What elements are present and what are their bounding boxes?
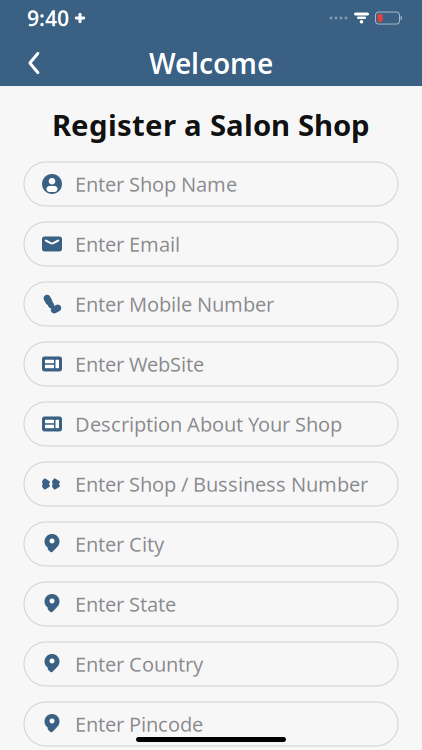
- button[interactable]: Enter Shop / Bussiness Number: [24, 462, 398, 506]
- button[interactable]: Enter Pincode: [24, 702, 398, 746]
- button[interactable]: Description About Your Shop: [24, 402, 398, 446]
- staticText: Enter City: [75, 531, 164, 557]
- staticText: Enter State: [75, 591, 176, 617]
- button[interactable]: Enter Mobile Number: [24, 282, 398, 326]
- staticText: Enter Pincode: [75, 711, 203, 737]
- staticText: 9:40: [27, 4, 69, 32]
- staticText: Enter Country: [75, 651, 203, 677]
- button[interactable]: Enter WebSite: [24, 342, 398, 386]
- button[interactable]: Enter Email: [24, 222, 398, 266]
- staticText: Enter Shop Name: [75, 171, 237, 197]
- button[interactable]: Enter State: [24, 582, 398, 626]
- button[interactable]: Enter Shop Name: [24, 162, 398, 206]
- staticText: Enter Email: [75, 231, 180, 257]
- staticText: Enter Mobile Number: [75, 291, 274, 317]
- staticText: Enter WebSite: [75, 351, 204, 377]
- staticText: Enter Shop / Bussiness Number: [75, 471, 368, 497]
- staticText: Welcome: [149, 44, 273, 82]
- button[interactable]: Back: [12, 41, 56, 85]
- staticText: Register a Salon Shop: [52, 105, 370, 144]
- staticText: Description About Your Shop: [75, 411, 342, 437]
- button[interactable]: Enter Country: [24, 642, 398, 686]
- button[interactable]: Enter City: [24, 522, 398, 566]
